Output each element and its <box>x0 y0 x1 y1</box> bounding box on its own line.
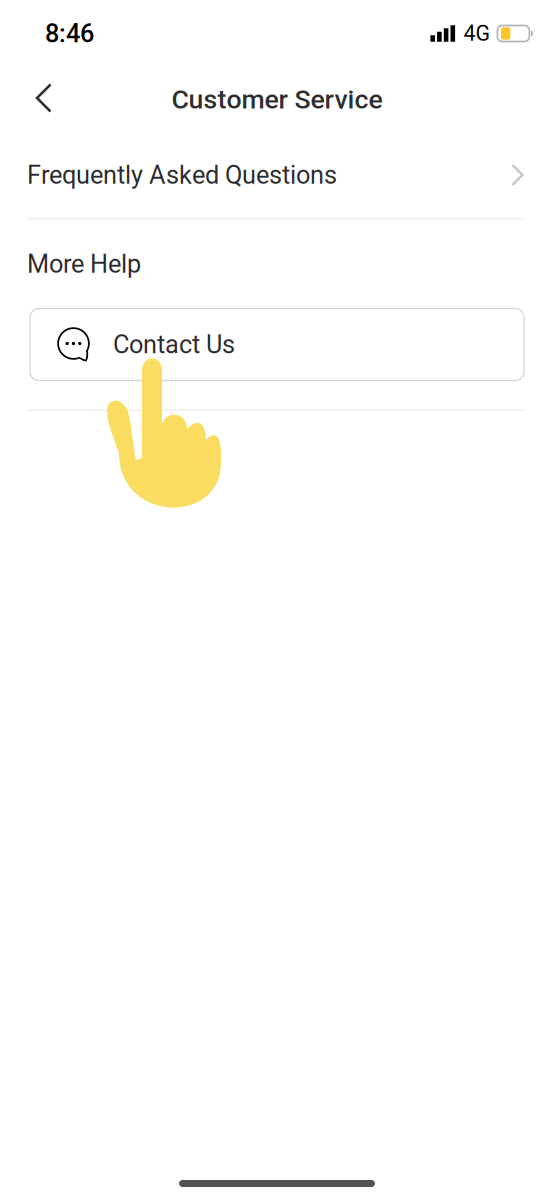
button[interactable]: Contact Us <box>30 308 524 380</box>
staticText: Frequently Asked Questions <box>27 160 337 190</box>
staticText: 4G <box>463 21 490 46</box>
staticText: Customer Service <box>171 84 382 115</box>
staticText: More Help <box>27 249 141 279</box>
staticText: Contact Us <box>113 330 235 359</box>
button[interactable]: Frequently Asked Questions <box>0 132 554 218</box>
button[interactable]: Back <box>21 75 67 124</box>
staticText: 8:46 <box>45 19 94 48</box>
